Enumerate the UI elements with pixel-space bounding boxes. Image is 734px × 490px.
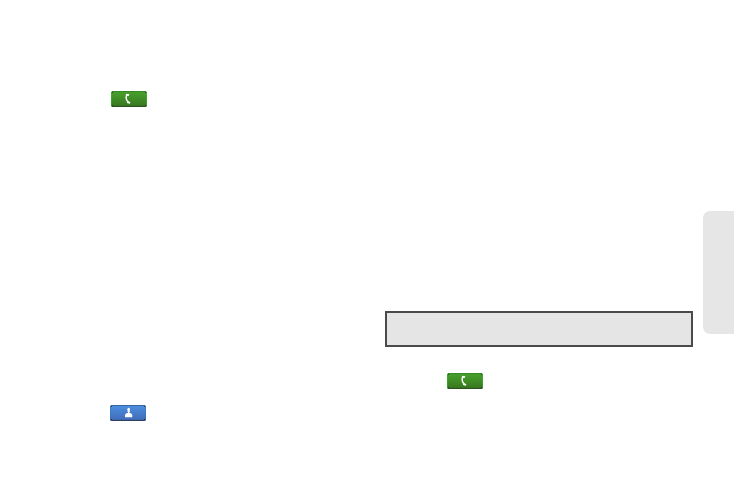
button[interactable]: Add contact	[110, 405, 146, 421]
button[interactable]	[385, 311, 693, 347]
button[interactable]: Call	[111, 91, 147, 107]
button[interactable]: Call	[447, 373, 483, 389]
